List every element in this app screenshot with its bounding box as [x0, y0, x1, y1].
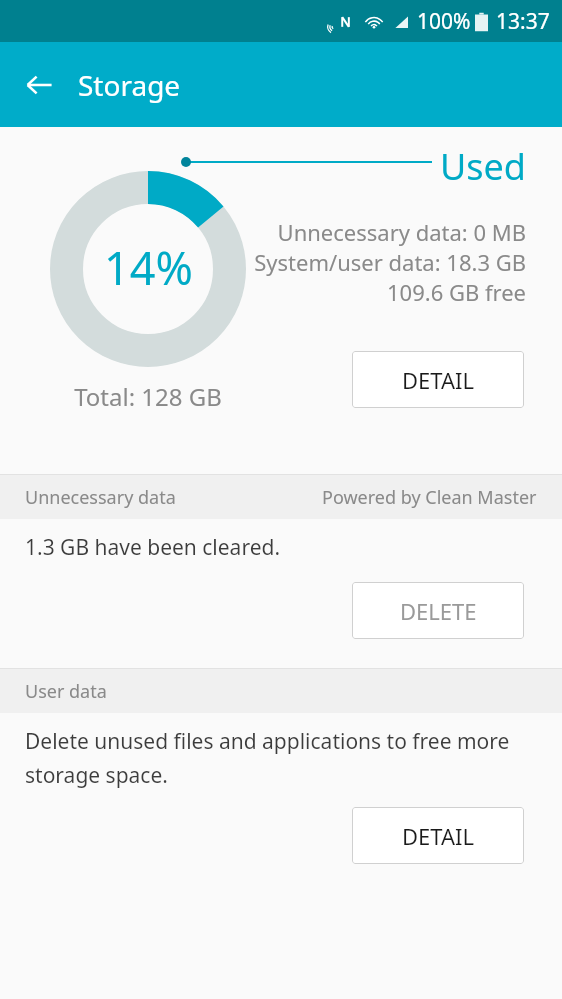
- staticText: User data: [25, 679, 107, 704]
- staticText: System/user data: 18.3 GB: [0, 247, 526, 277]
- staticText: Delete unused files and applications to …: [25, 727, 520, 789]
- staticText: DETAIL: [402, 365, 475, 395]
- staticText: Total: 128 GB: [0, 380, 296, 413]
- staticText: Unnecessary data: [25, 485, 176, 510]
- button[interactable]: DELETE: [352, 582, 524, 639]
- staticText: Powered by Clean Master: [322, 485, 537, 510]
- staticText: 100%: [417, 7, 471, 36]
- staticText: 14%: [104, 237, 193, 298]
- button[interactable]: DETAIL: [352, 351, 524, 408]
- staticText: 1.3 GB have been cleared.: [25, 533, 281, 562]
- staticText: Used: [430, 142, 526, 191]
- staticText: Storage: [78, 66, 181, 104]
- staticText: DELETE: [400, 596, 477, 626]
- staticText: Unnecessary data: 0 MB: [0, 217, 526, 247]
- button[interactable]: DETAIL: [352, 807, 524, 864]
- staticText: 13:37: [496, 7, 550, 36]
- staticText: 109.6 GB free: [0, 277, 526, 307]
- button[interactable]: Back: [14, 60, 64, 110]
- staticText: DETAIL: [402, 821, 475, 851]
